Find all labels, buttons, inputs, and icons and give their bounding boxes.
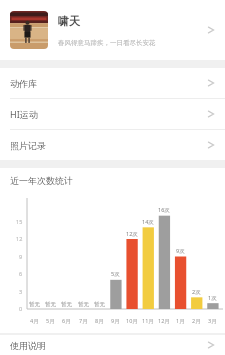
staticText: 使用说明 bbox=[10, 340, 46, 351]
staticText: 暂无 bbox=[29, 301, 40, 308]
staticText: 6 bbox=[19, 270, 23, 277]
staticText: 暂无 bbox=[78, 301, 89, 308]
button[interactable]: 啸天 bbox=[0, 0, 225, 60]
staticText: 11月 bbox=[142, 317, 154, 325]
staticText: 5月 bbox=[46, 317, 55, 325]
staticText: 7月 bbox=[79, 317, 88, 325]
staticText: 1月 bbox=[176, 317, 185, 325]
staticText: 暂无 bbox=[94, 301, 105, 308]
staticText: 5次 bbox=[111, 270, 120, 278]
staticText: 6月 bbox=[62, 317, 71, 325]
staticText: 2次 bbox=[192, 288, 201, 296]
staticText: 3月 bbox=[208, 317, 217, 325]
staticText: 照片记录 bbox=[10, 140, 46, 151]
button[interactable]: 照片记录 bbox=[0, 130, 225, 160]
staticText: 3 bbox=[19, 288, 23, 295]
staticText: 暂无 bbox=[45, 301, 56, 308]
staticText: 10月 bbox=[126, 317, 138, 325]
staticText: 9 bbox=[19, 253, 23, 260]
button[interactable]: HI运动 bbox=[0, 99, 225, 129]
staticText: 近一年次数统计 bbox=[10, 175, 73, 186]
staticText: HI运动 bbox=[10, 108, 38, 120]
staticText: 1次 bbox=[208, 294, 217, 302]
staticText: 8月 bbox=[95, 317, 104, 325]
staticText: 春风得意马蹄疾，一日看尽长安花 bbox=[58, 39, 156, 47]
staticText: 9月 bbox=[111, 317, 120, 325]
staticText: 暂无 bbox=[61, 301, 72, 308]
staticText: 啸天 bbox=[58, 14, 80, 28]
staticText: 0 bbox=[19, 305, 23, 312]
staticText: 9次 bbox=[176, 247, 185, 255]
staticText: 12次 bbox=[126, 230, 138, 238]
staticText: 动作库 bbox=[10, 78, 37, 89]
staticText: 2月 bbox=[192, 317, 201, 325]
staticText: 12 bbox=[16, 235, 23, 242]
button[interactable]: 使用说明 bbox=[0, 335, 225, 355]
staticText: 12月 bbox=[158, 317, 170, 325]
button[interactable]: 动作库 bbox=[0, 68, 225, 98]
staticText: 16次 bbox=[158, 206, 170, 214]
staticText: 14次 bbox=[142, 218, 154, 226]
staticText: 4月 bbox=[30, 317, 39, 325]
staticText: 15 bbox=[16, 218, 23, 225]
